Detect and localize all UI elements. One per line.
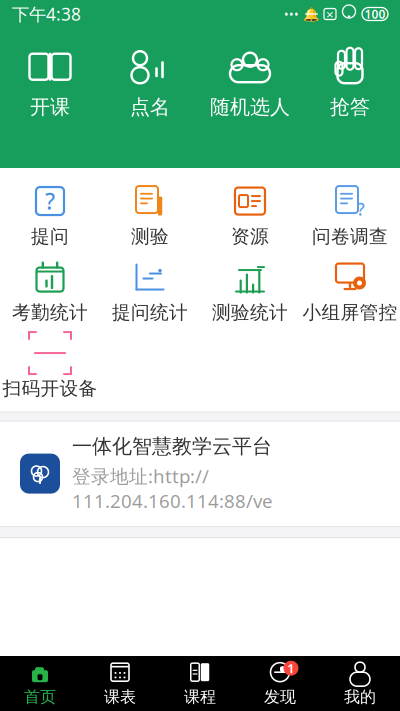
- staticText: 测验统计: [212, 301, 288, 324]
- staticText: 资源: [231, 225, 269, 248]
- staticText: 首页: [24, 687, 56, 707]
- staticText: 一体化智慧教学云平台: [72, 434, 272, 459]
- button[interactable]: ?: [0, 178, 100, 254]
- staticText: 小组屏管控: [302, 301, 397, 324]
- staticText: 问卷调查: [312, 225, 388, 248]
- staticText: 课表: [104, 687, 136, 707]
- button[interactable]: 提问统计: [100, 254, 200, 330]
- staticText: 登录地址:http://111.204.160.114:88/ve: [72, 464, 273, 513]
- staticText: 点名: [130, 95, 170, 119]
- button[interactable]: 考勤统计: [0, 254, 100, 330]
- button[interactable]: 抢答: [300, 36, 400, 132]
- button[interactable]: 课程: [160, 658, 240, 708]
- button[interactable]: 测验统计: [200, 254, 300, 330]
- staticText: 开课: [30, 95, 70, 119]
- button[interactable]: 测验: [100, 178, 200, 254]
- button[interactable]: 开课: [0, 36, 100, 132]
- staticText: 提问统计: [112, 301, 188, 324]
- staticText: ?: [357, 197, 365, 220]
- staticText: 发现: [264, 687, 296, 707]
- staticText: 课程: [184, 687, 216, 707]
- staticText: ×: [326, 5, 334, 23]
- staticText: 提问: [31, 225, 69, 248]
- button[interactable]: 资源: [200, 178, 300, 254]
- button[interactable]: ?: [300, 178, 400, 254]
- staticText: 考勤统计: [12, 301, 88, 324]
- staticText: 🔔: [303, 6, 320, 22]
- button[interactable]: 一体化智慧教学云平台: [0, 421, 400, 526]
- button[interactable]: 小组屏管控: [300, 254, 400, 330]
- button[interactable]: 随机选人: [200, 36, 300, 132]
- staticText: 1: [287, 659, 295, 677]
- staticText: 测验: [131, 225, 169, 248]
- staticText: 随机选人: [210, 95, 290, 119]
- staticText: 扫码开设备: [2, 377, 97, 400]
- button[interactable]: 我的: [320, 658, 400, 708]
- button[interactable]: 首页: [0, 658, 80, 708]
- staticText: 下午4:38: [12, 2, 81, 25]
- button[interactable]: 1: [240, 658, 320, 708]
- staticText: 我的: [344, 687, 376, 707]
- button[interactable]: 点名: [100, 36, 200, 132]
- button[interactable]: 课表: [80, 658, 160, 708]
- button[interactable]: 扫码开设备: [0, 330, 100, 406]
- staticText: ?: [45, 186, 55, 216]
- staticText: 抢答: [330, 95, 370, 119]
- staticText: 100: [364, 6, 385, 22]
- staticText: •••: [284, 6, 299, 22]
